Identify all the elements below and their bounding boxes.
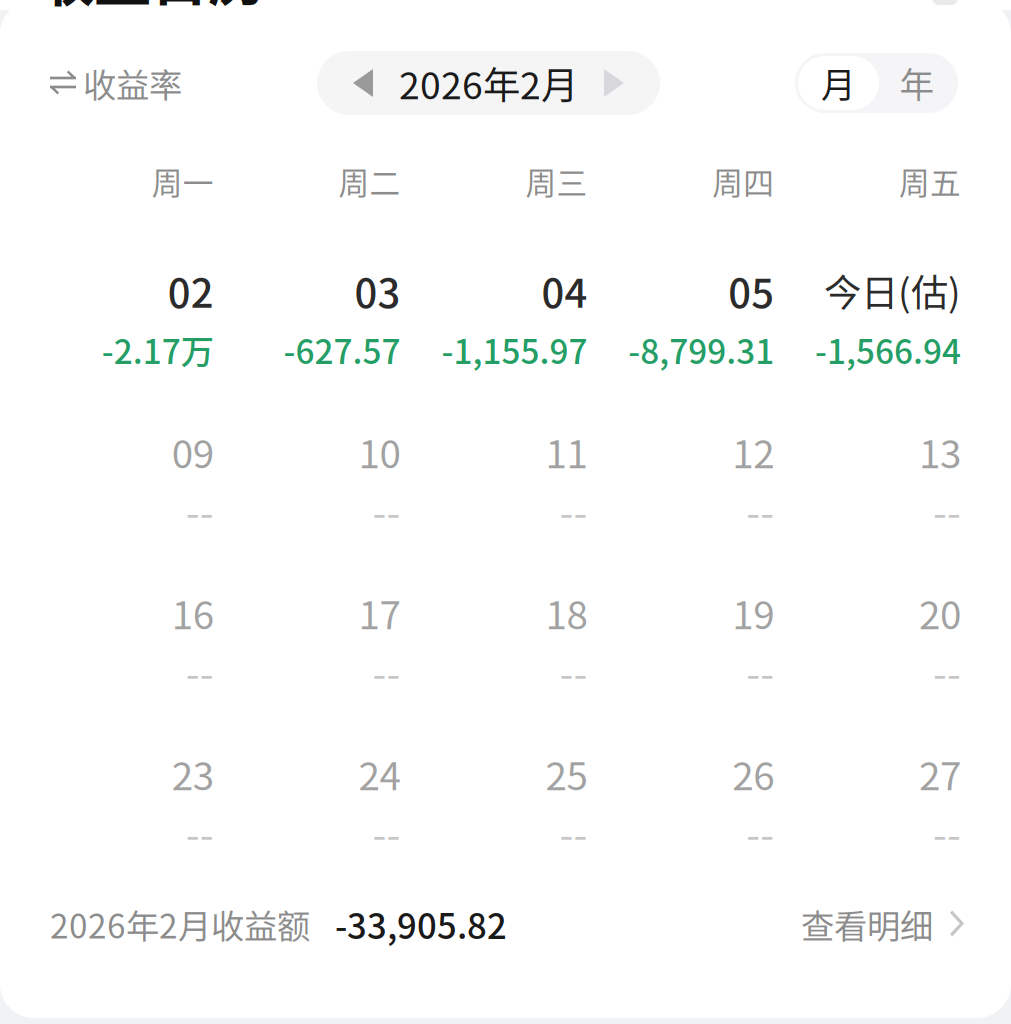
staticText: -- <box>933 481 961 539</box>
staticText: -- <box>186 481 214 539</box>
staticText: -- <box>373 481 401 539</box>
staticText: -1,566.94 <box>815 325 961 374</box>
staticText: 今日(估) <box>824 263 961 317</box>
staticText: 03 <box>355 261 401 319</box>
staticText: 04 <box>541 261 587 319</box>
staticText: 12 <box>732 423 774 479</box>
staticText: 16 <box>172 584 214 640</box>
staticText: 周一 <box>152 159 214 203</box>
staticText: -- <box>746 642 774 700</box>
button[interactable]: 年 <box>879 56 955 110</box>
staticText: 查看明细 <box>801 900 933 948</box>
staticText: 收益率 <box>83 59 182 107</box>
staticText: -- <box>373 642 401 700</box>
staticText: -- <box>746 803 774 861</box>
staticText: 05 <box>728 261 774 319</box>
staticText: 26 <box>732 745 774 801</box>
staticText: 周五 <box>899 159 961 203</box>
button[interactable]: 2026年2月收益额 <box>0 878 1011 1018</box>
staticText: 27 <box>919 745 961 801</box>
staticText: 17 <box>359 584 401 640</box>
staticText: 周三 <box>525 159 587 203</box>
button[interactable]: 月 <box>798 56 879 110</box>
staticText: 周四 <box>712 159 774 203</box>
staticText: 周二 <box>339 159 401 203</box>
staticText: 19 <box>732 584 774 640</box>
staticText: -- <box>186 803 214 861</box>
staticText: -- <box>933 642 961 700</box>
staticText: 18 <box>545 584 587 640</box>
staticText: 24 <box>359 745 401 801</box>
staticText: 13 <box>919 423 961 479</box>
staticText: -2.17万 <box>102 325 214 374</box>
staticText: 02 <box>168 261 214 319</box>
staticText: -- <box>559 481 587 539</box>
staticText: -- <box>746 481 774 539</box>
button[interactable]: More options <box>932 0 958 5</box>
staticText: -- <box>559 642 587 700</box>
staticText: 20 <box>919 584 961 640</box>
staticText: 年 <box>899 58 934 108</box>
staticText: -- <box>559 803 587 861</box>
staticText: 收益日历 <box>37 0 265 17</box>
staticText: -- <box>373 803 401 861</box>
staticText: 23 <box>172 745 214 801</box>
staticText: 11 <box>545 423 587 479</box>
staticText: -627.57 <box>284 325 401 374</box>
staticText: 25 <box>545 745 587 801</box>
staticText: -33,905.82 <box>335 899 507 949</box>
staticText: -8,799.31 <box>628 325 774 374</box>
button[interactable]: 收益率 <box>50 51 182 115</box>
staticText: 2026年2月 <box>399 56 578 110</box>
button[interactable]: 2026年2月 <box>317 51 660 115</box>
staticText: -- <box>186 642 214 700</box>
staticText: -1,155.97 <box>441 325 587 374</box>
staticText: 2026年2月收益额 <box>50 900 310 948</box>
staticText: 09 <box>172 423 214 479</box>
staticText: 10 <box>359 423 401 479</box>
staticText: -- <box>933 803 961 861</box>
staticText: 月 <box>821 58 856 108</box>
